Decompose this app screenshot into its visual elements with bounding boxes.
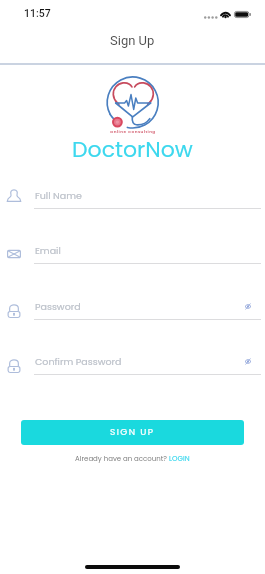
staticText: DoctorNow <box>72 134 193 165</box>
staticText: Sign Up <box>110 33 155 48</box>
button[interactable]: Email <box>0 239 265 265</box>
button[interactable]: Full Name <box>0 184 265 210</box>
button[interactable]: Show password <box>239 297 257 315</box>
staticText: SIGN UP <box>110 426 155 439</box>
button[interactable]: Already have an account? <box>0 452 265 466</box>
button[interactable]: Confirm Password <box>0 350 265 376</box>
staticText: Full Name <box>35 189 82 202</box>
staticText: Already have an account? <box>75 454 169 464</box>
staticText: Confirm Password <box>35 355 122 368</box>
staticText: Online Consulting <box>110 129 156 135</box>
button[interactable]: SIGN UP <box>21 420 244 445</box>
staticText: Email <box>35 244 61 257</box>
button[interactable]: Password <box>0 295 265 321</box>
staticText: Password <box>35 300 81 313</box>
staticText: 11:57 <box>24 7 51 19</box>
staticText: LOGIN <box>169 454 190 464</box>
button[interactable]: Show password <box>239 352 257 370</box>
